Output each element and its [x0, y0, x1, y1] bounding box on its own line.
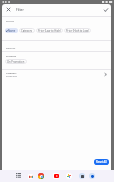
button[interactable]: Price (Low to High) — [36, 28, 63, 33]
button[interactable]: YouTube — [53, 173, 59, 179]
staticText: Name — [8, 29, 16, 33]
staticText: Price (Low to High) — [38, 29, 61, 33]
button[interactable]: Name — [5, 28, 18, 33]
button[interactable]: Reset All — [94, 159, 109, 165]
staticText: Category — [21, 29, 33, 33]
button[interactable]: Category — [2, 69, 111, 82]
button[interactable]: Gmail — [27, 173, 33, 179]
button[interactable]: Close — [4, 5, 13, 14]
staticText: Projectors — [6, 75, 17, 78]
button[interactable]: Apply filters — [101, 5, 110, 14]
button[interactable]: Chrome — [38, 173, 44, 179]
staticText: Sort by — [6, 19, 15, 22]
staticText: Reset All — [96, 160, 107, 164]
staticText: Category — [6, 71, 17, 74]
button[interactable]: Price (High to Low) — [64, 28, 91, 33]
staticText: On Promotion — [7, 60, 25, 64]
button[interactable]: Photos — [66, 173, 72, 179]
staticText: Filter — [16, 8, 24, 12]
staticText: Price (High to Low) — [66, 29, 89, 33]
button[interactable]: Recent apps — [79, 173, 85, 179]
staticText: Filter by — [6, 46, 16, 49]
button[interactable]: All apps — [16, 173, 21, 178]
button[interactable]: Category — [19, 28, 35, 33]
button[interactable]: Messages — [89, 173, 95, 179]
staticText: Products — [6, 54, 17, 57]
button[interactable]: On Promotion — [5, 59, 27, 64]
